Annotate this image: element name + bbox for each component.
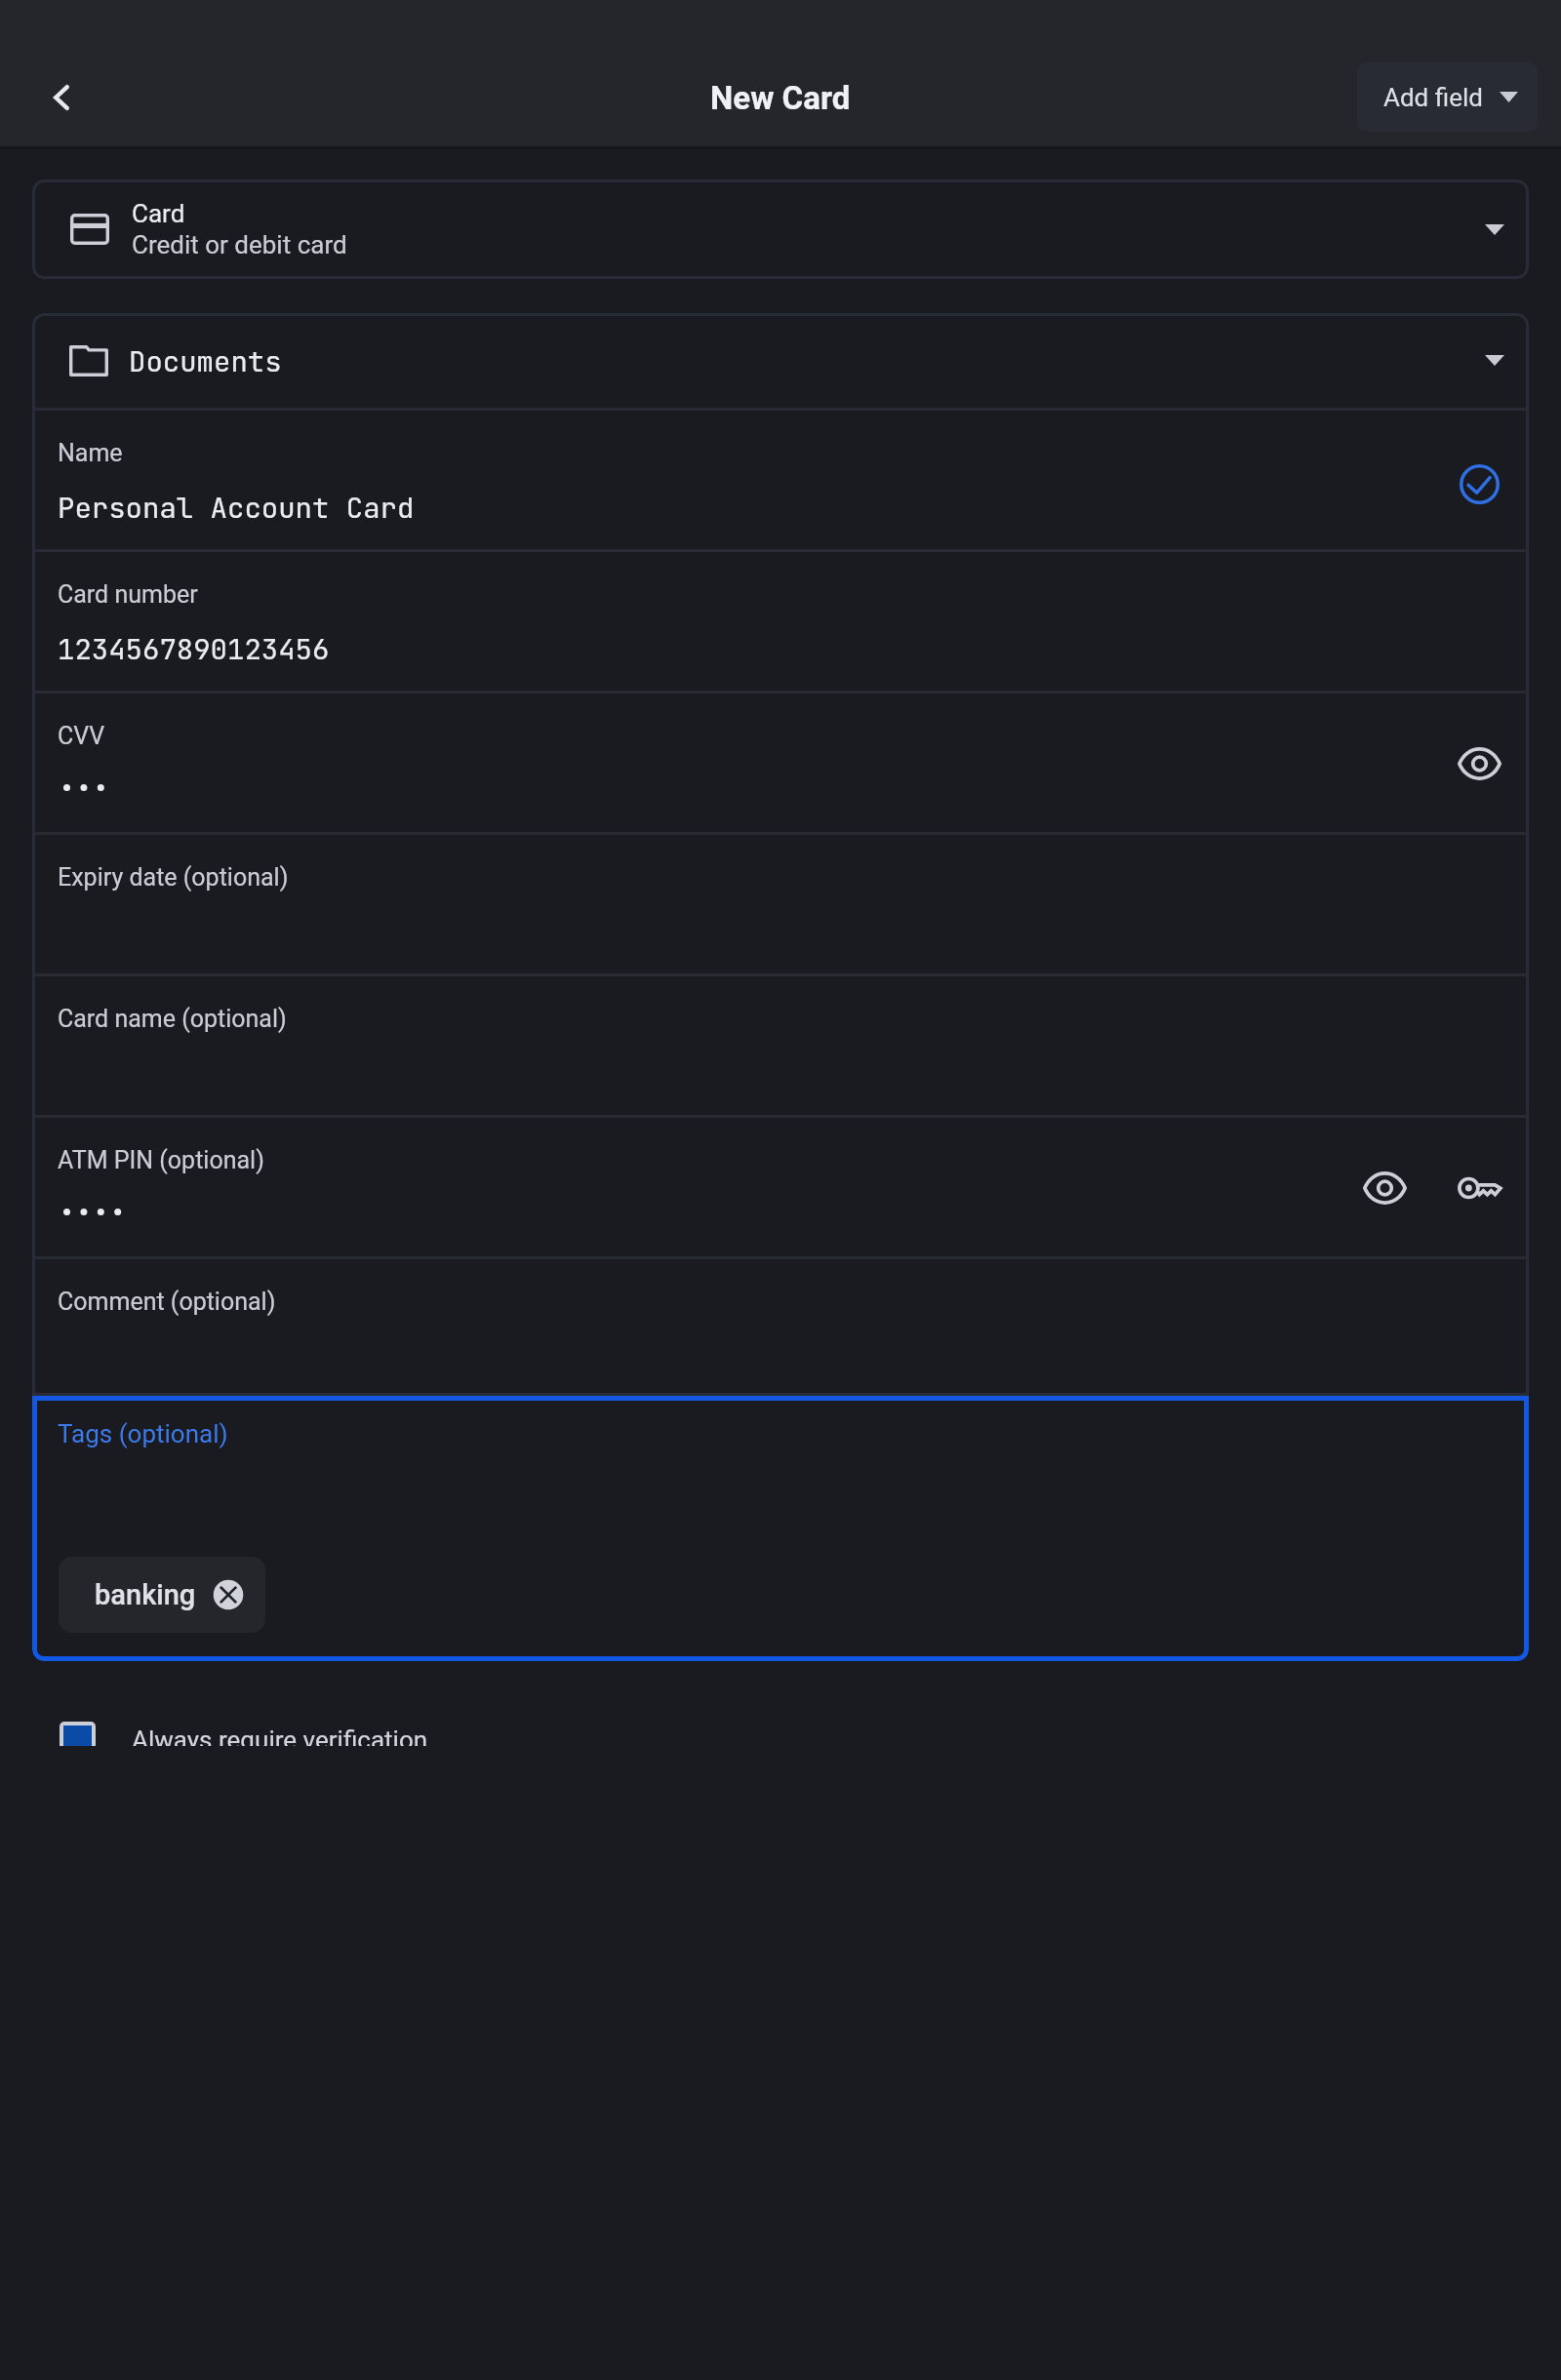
- staticText: Expiry date (optional): [58, 863, 289, 892]
- staticText: ATM PIN (optional): [58, 1146, 264, 1174]
- button[interactable]: Add field: [1357, 62, 1538, 132]
- button[interactable]: banking: [59, 1557, 265, 1633]
- button[interactable]: Card name (optional): [32, 976, 1529, 1115]
- button[interactable]: Card number: [32, 552, 1529, 691]
- staticText: Credit or debit card: [132, 230, 347, 259]
- button[interactable]: Name: [32, 411, 1529, 549]
- button[interactable]: Tags (optional): [32, 1396, 1529, 1661]
- button[interactable]: Card: [32, 179, 1529, 279]
- staticText: Name: [58, 439, 123, 467]
- staticText: Always require verification: [132, 1725, 428, 1746]
- staticText: Card: [132, 199, 185, 228]
- staticText: CVV: [58, 722, 105, 750]
- button[interactable]: Comment (optional): [32, 1259, 1529, 1396]
- button[interactable]: Documents: [32, 313, 1529, 408]
- button[interactable]: Toggle visibility: [1432, 716, 1527, 811]
- button[interactable]: Generate PIN: [1432, 1140, 1527, 1235]
- staticText: Card number: [58, 580, 198, 609]
- button[interactable]: ATM PIN (optional): [32, 1118, 1529, 1256]
- button[interactable]: Always require verification: [0, 1703, 1561, 1746]
- button[interactable]: Verified: [1432, 433, 1527, 528]
- staticText: Personal Account Card: [58, 489, 415, 526]
- button[interactable]: Back: [18, 51, 105, 144]
- button[interactable]: Expiry date (optional): [32, 835, 1529, 973]
- staticText: Card name (optional): [58, 1005, 287, 1033]
- staticText: New Card: [710, 79, 851, 117]
- button[interactable]: Remove tag banking: [213, 1579, 244, 1610]
- staticText: Tags (optional): [58, 1419, 228, 1448]
- button[interactable]: Toggle visibility: [1338, 1140, 1432, 1235]
- staticText: banking: [95, 1578, 196, 1611]
- staticText: Add field: [1383, 83, 1483, 112]
- staticText: Comment (optional): [58, 1288, 276, 1316]
- staticText: Documents: [129, 342, 282, 379]
- button[interactable]: CVV: [32, 694, 1529, 832]
- staticText: 1234567890123456: [58, 630, 330, 667]
